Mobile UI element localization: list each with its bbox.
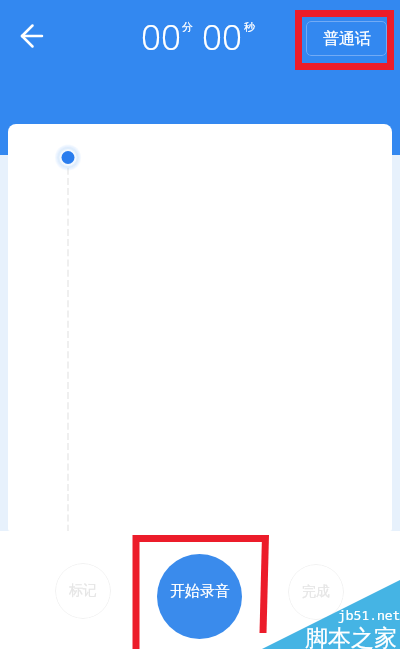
staticText: 秒 bbox=[244, 20, 255, 34]
button[interactable]: 开始录音 bbox=[157, 554, 242, 639]
staticText: jb51.net bbox=[338, 606, 400, 624]
staticText: 脚本之家 bbox=[305, 624, 397, 649]
button[interactable]: Back bbox=[12, 14, 56, 58]
staticText: 普通话 bbox=[323, 29, 371, 49]
staticText: 分 bbox=[182, 20, 193, 34]
staticText: 完成 bbox=[302, 583, 330, 601]
button[interactable]: 普通话 bbox=[306, 21, 387, 56]
button[interactable]: 标记 bbox=[55, 563, 111, 619]
staticText: 开始录音 bbox=[170, 582, 230, 601]
staticText: 00 bbox=[202, 13, 242, 61]
button[interactable]: 完成 bbox=[288, 564, 344, 620]
staticText: 00 bbox=[141, 13, 181, 61]
staticText: 标记 bbox=[69, 582, 97, 600]
